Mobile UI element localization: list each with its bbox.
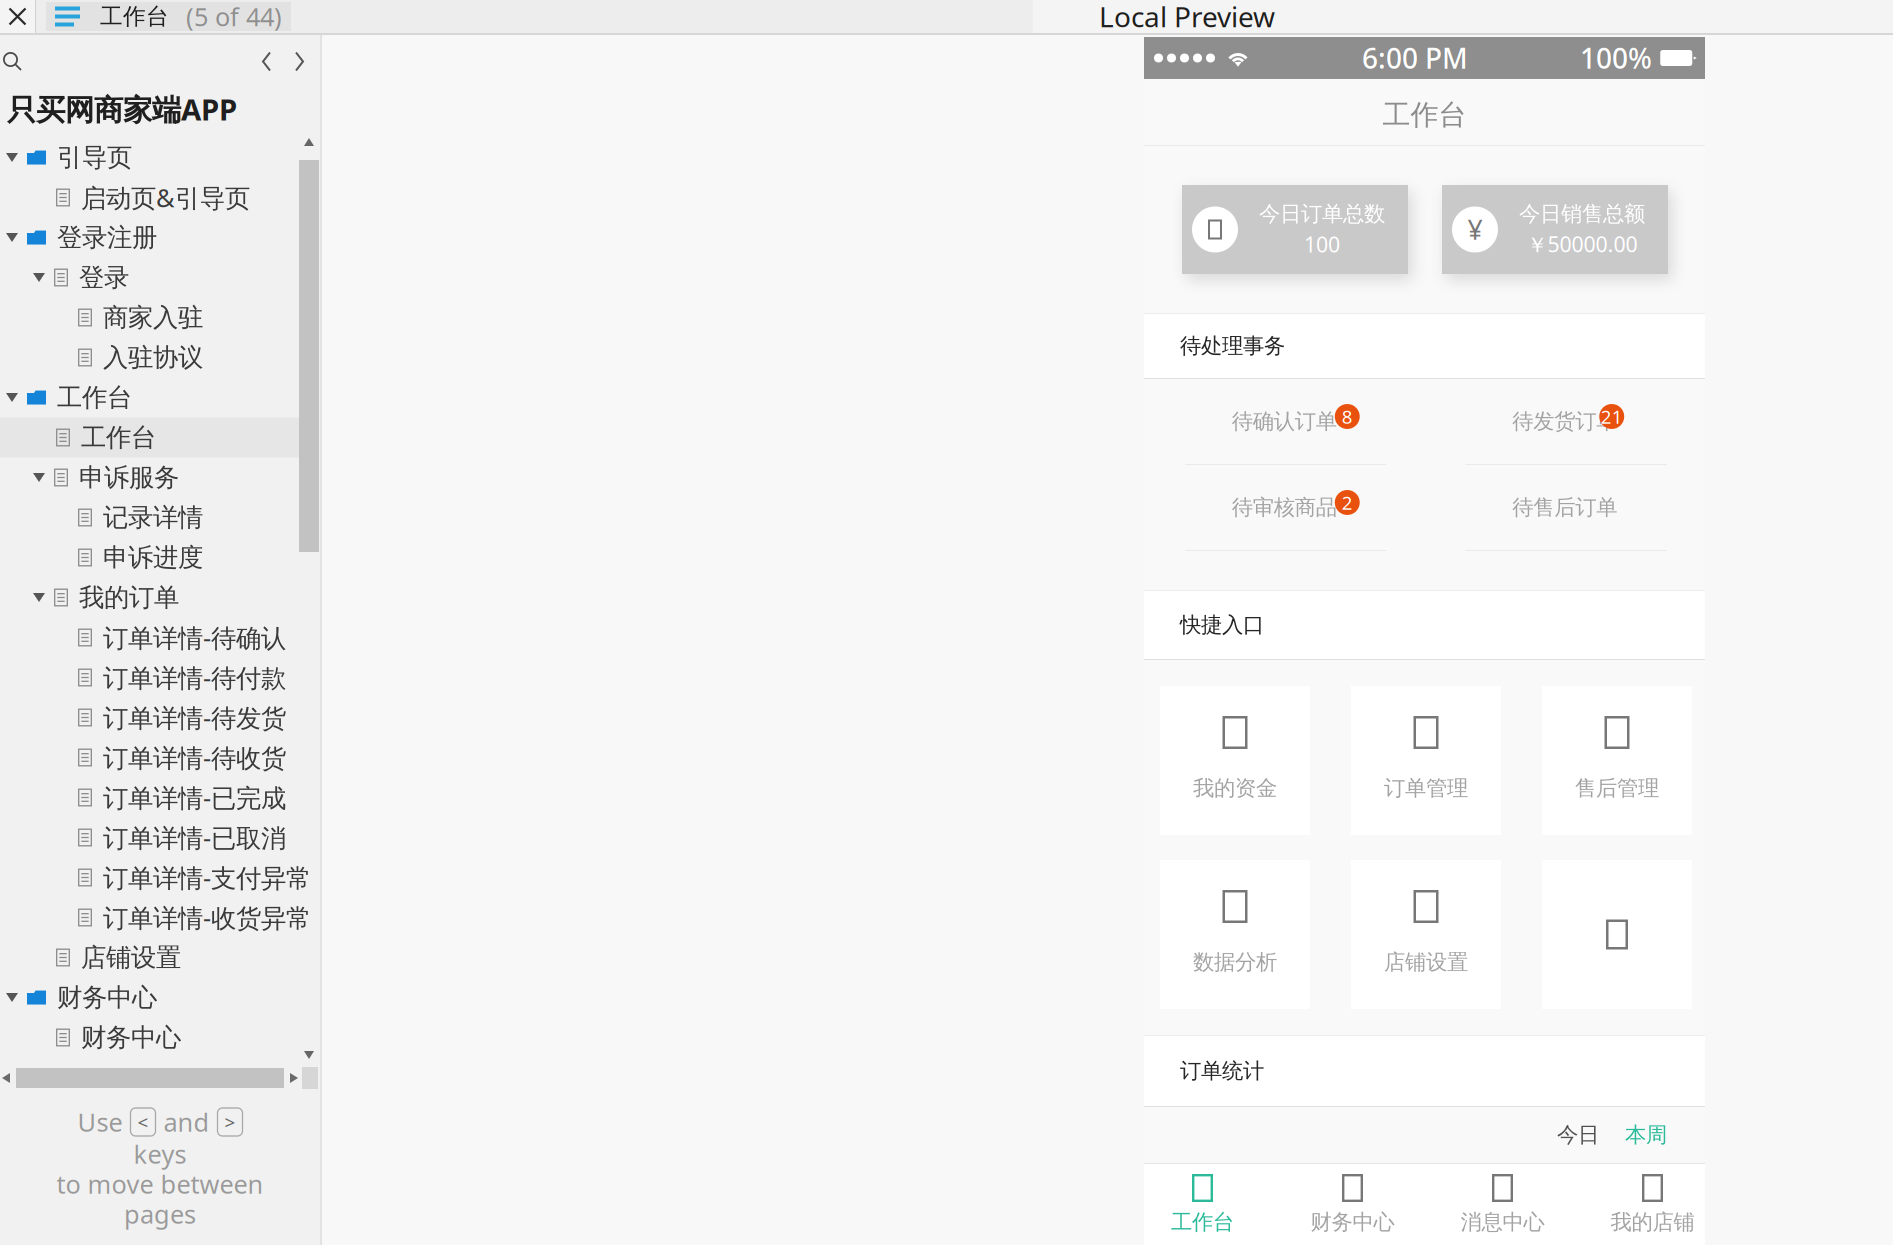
staticText: 商家入驻: [103, 302, 203, 333]
staticText: 消息中心: [1460, 1209, 1544, 1235]
button[interactable]: 申诉进度: [0, 537, 320, 577]
staticText: 待发货订单: [1512, 408, 1617, 435]
button[interactable]: 订单详情-待收货: [0, 737, 320, 777]
staticText: 启动页&引导页: [81, 181, 250, 214]
button[interactable]: 我的资金: [1160, 686, 1310, 835]
staticText: 订单统计: [1180, 1058, 1264, 1084]
staticText: 订单详情-收货异常: [103, 901, 311, 934]
button[interactable]: 今日: [1557, 1122, 1599, 1148]
staticText: 店铺设置: [1384, 949, 1468, 975]
button[interactable]: Next page: [293, 50, 306, 72]
button[interactable]: 订单详情-收货异常: [0, 897, 320, 937]
button[interactable]: [1542, 860, 1692, 1009]
staticText: 工作台: [1382, 98, 1466, 132]
button[interactable]: Close: [8, 7, 27, 26]
button[interactable]: 我的订单: [0, 577, 320, 617]
staticText: keys: [133, 1137, 186, 1171]
button[interactable]: 消息中心: [1449, 1164, 1555, 1245]
staticText: 21: [1601, 404, 1623, 429]
button[interactable]: 登录: [0, 257, 320, 297]
button[interactable]: 订单详情-待确认: [0, 617, 320, 657]
button[interactable]: 启动页&引导页: [0, 177, 320, 217]
staticText: 今日订单总数: [1259, 201, 1385, 227]
staticText: 入驻协议: [103, 342, 203, 373]
button[interactable]: 财务中心: [0, 977, 320, 1017]
button[interactable]: 店铺设置: [1351, 860, 1501, 1009]
button[interactable]: 订单详情-支付异常: [0, 857, 320, 897]
staticText: 今日销售总额: [1519, 201, 1645, 227]
staticText: 待售后订单: [1512, 494, 1617, 521]
staticText: 订单管理: [1384, 775, 1468, 801]
button[interactable]: 待审核商品: [1144, 465, 1424, 551]
button[interactable]: 订单详情-已完成: [0, 777, 320, 817]
staticText: 数据分析: [1193, 949, 1277, 975]
button[interactable]: 今日订单总数: [1182, 185, 1408, 274]
button[interactable]: 待确认订单: [1144, 379, 1424, 465]
staticText: 我的店铺: [1610, 1209, 1694, 1235]
staticText: 引导页: [57, 142, 132, 173]
button[interactable]: 我的店铺: [1599, 1164, 1705, 1245]
button[interactable]: 本周: [1625, 1122, 1667, 1148]
staticText: 申诉进度: [103, 542, 203, 573]
button[interactable]: 工作台: [1149, 1164, 1255, 1245]
button[interactable]: 售后管理: [1542, 686, 1692, 835]
staticText: ￥50000.00: [1526, 230, 1637, 258]
button[interactable]: 工作台: [0, 417, 320, 457]
staticText: 我的订单: [79, 582, 179, 613]
staticText: 订单详情-待付款: [103, 661, 286, 694]
staticText: 记录详情: [103, 502, 203, 533]
staticText: to move between: [56, 1167, 263, 1201]
staticText: 工作台: [81, 422, 156, 453]
staticText: Local Preview: [1099, 0, 1275, 35]
staticText: 店铺设置: [81, 942, 181, 973]
button[interactable]: 工作台: [0, 377, 320, 417]
button[interactable]: Search: [2, 51, 23, 72]
staticText: 工作台: [1171, 1209, 1234, 1235]
button[interactable]: 订单详情-待付款: [0, 657, 320, 697]
button[interactable]: 订单详情-待发货: [0, 697, 320, 737]
staticText: 财务中心: [57, 982, 157, 1013]
button[interactable]: Previous page: [260, 50, 273, 72]
staticText: 申诉服务: [79, 462, 179, 493]
staticText: 工作台: [100, 3, 169, 30]
staticText: 待确认订单: [1232, 408, 1337, 435]
button[interactable]: 店铺设置: [0, 937, 320, 977]
button[interactable]: 申诉服务: [0, 457, 320, 497]
staticText: 订单详情-已完成: [103, 781, 286, 814]
staticText: 订单详情-待确认: [103, 621, 286, 654]
staticText: 财务中心: [1310, 1209, 1394, 1235]
staticText: (5 of 44): [186, 0, 282, 33]
staticText: 100: [1304, 230, 1340, 258]
staticText: 售后管理: [1575, 775, 1659, 801]
button[interactable]: 待发货订单: [1424, 379, 1705, 465]
button[interactable]: 数据分析: [1160, 860, 1310, 1009]
button[interactable]: 订单详情-已取消: [0, 817, 320, 857]
button[interactable]: 待售后订单: [1424, 465, 1705, 551]
staticText: 8: [1342, 404, 1353, 429]
staticText: 本周: [1625, 1122, 1667, 1148]
staticText: 工作台: [57, 382, 132, 413]
staticText: 今日: [1557, 1122, 1599, 1148]
staticText: 快捷入口: [1180, 612, 1264, 638]
button[interactable]: 引导页: [0, 137, 320, 177]
staticText: 2: [1342, 490, 1353, 515]
staticText: 我的资金: [1193, 775, 1277, 801]
staticText: <: [137, 1110, 148, 1134]
button[interactable]: 记录详情: [0, 497, 320, 537]
staticText: 待审核商品: [1232, 494, 1337, 521]
staticText: 订单详情-支付异常: [103, 861, 311, 894]
button[interactable]: 工作台: [46, 2, 291, 31]
staticText: 待处理事务: [1180, 333, 1285, 359]
button[interactable]: 登录注册: [0, 217, 320, 257]
button[interactable]: 财务中心: [0, 1017, 320, 1057]
button[interactable]: 财务中心: [1299, 1164, 1405, 1245]
staticText: 登录注册: [57, 222, 157, 253]
button[interactable]: 入驻协议: [0, 337, 320, 377]
staticText: 6:00 PM: [1362, 39, 1468, 77]
button[interactable]: 订单管理: [1351, 686, 1501, 835]
button[interactable]: ¥: [1442, 185, 1668, 274]
button[interactable]: 商家入驻: [0, 297, 320, 337]
staticText: 100%: [1580, 39, 1652, 77]
staticText: pages: [124, 1197, 196, 1231]
staticText: 订单详情-待发货: [103, 701, 286, 734]
